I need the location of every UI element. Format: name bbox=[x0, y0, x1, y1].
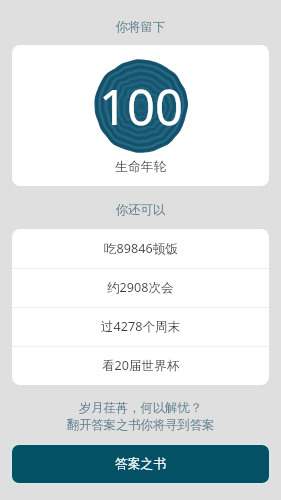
staticText: 翻开答案之书你将寻到答案 bbox=[0, 417, 281, 432]
staticText: 你还可以 bbox=[0, 202, 281, 218]
staticText: 岁月荏苒，何以解忧？ bbox=[0, 400, 281, 415]
button[interactable]: 答案之书 bbox=[12, 445, 269, 483]
button[interactable]: 约2908次会 bbox=[12, 268, 269, 307]
staticText: 看20届世界杯 bbox=[102, 357, 180, 374]
staticText: 答案之书 bbox=[115, 456, 167, 472]
staticText: 生命年轮 bbox=[115, 159, 167, 175]
button[interactable]: 过4278个周末 bbox=[12, 307, 269, 346]
staticText: 过4278个周末 bbox=[101, 318, 181, 335]
staticText: 你将留下 bbox=[0, 19, 281, 35]
button[interactable]: 吃89846顿饭 bbox=[12, 229, 269, 268]
staticText: 100 bbox=[99, 73, 184, 140]
button[interactable]: 看20届世界杯 bbox=[12, 346, 269, 385]
staticText: 约2908次会 bbox=[107, 279, 174, 296]
button[interactable]: 100 bbox=[12, 45, 269, 186]
staticText: 吃89846顿饭 bbox=[104, 240, 178, 257]
